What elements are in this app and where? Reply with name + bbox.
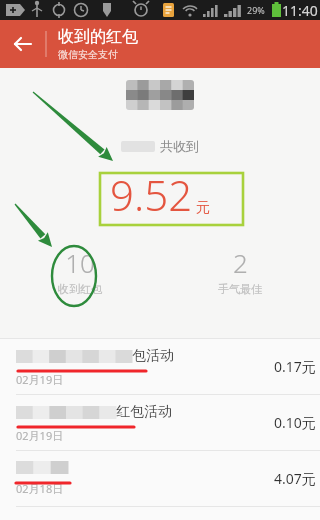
- staticText: 手气最佳: [218, 282, 262, 296]
- button[interactable]: 10: [0, 245, 160, 296]
- staticText: 9.52: [110, 166, 193, 223]
- staticText: 元: [196, 199, 210, 217]
- staticText: 包活动: [132, 347, 174, 365]
- button[interactable]: 红包活动: [0, 395, 320, 450]
- staticText: 2: [233, 245, 248, 280]
- staticText: 02月19日: [16, 372, 64, 387]
- staticText: 微信安全支付: [58, 48, 118, 61]
- staticText: 共收到: [160, 138, 199, 154]
- staticText: 02月19日: [16, 428, 64, 443]
- button[interactable]: 2: [160, 245, 320, 296]
- staticText: 0.10元: [274, 413, 316, 432]
- staticText: 红包活动: [116, 403, 172, 421]
- staticText: 11:40: [282, 1, 318, 20]
- staticText: 02月18日: [16, 481, 64, 496]
- staticText: 收到红包: [58, 282, 102, 296]
- staticText: 10: [65, 245, 95, 280]
- button[interactable]: 包活动: [0, 339, 320, 394]
- staticText: 4.07元: [274, 469, 316, 488]
- button[interactable]: 02月18日: [0, 451, 320, 506]
- staticText: 29%: [247, 4, 265, 16]
- staticText: 0.17元: [274, 357, 316, 376]
- staticText: 收到的红包: [58, 27, 138, 47]
- button[interactable]: Back: [0, 20, 46, 68]
